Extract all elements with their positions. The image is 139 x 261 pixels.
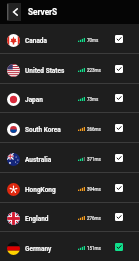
staticText: 394ms [87, 187, 101, 192]
staticText: United States [25, 67, 65, 75]
staticText: 371ms [87, 157, 101, 162]
staticText: 266ms [87, 127, 101, 132]
button[interactable]: Germany [0, 232, 139, 261]
button[interactable]: South Korea [0, 113, 139, 143]
button[interactable]: Select HongKong [115, 184, 123, 192]
staticText: Australia [25, 156, 52, 164]
staticText: 151ms [87, 246, 101, 251]
staticText: 73ms [87, 97, 99, 102]
button[interactable]: Select South Korea [115, 124, 123, 132]
button[interactable]: Japan [0, 83, 139, 113]
button[interactable]: Select Germany [115, 243, 123, 251]
staticText: South Korea [25, 126, 61, 134]
button[interactable]: United States [0, 54, 139, 84]
staticText: Germany [25, 245, 52, 253]
staticText: Canada [25, 37, 47, 45]
staticText: 276ms [87, 216, 101, 221]
button[interactable]: Select Canada [115, 35, 123, 43]
button[interactable]: Select England [115, 213, 123, 221]
button[interactable]: Canada [0, 24, 139, 54]
staticText: 223ms [87, 68, 101, 73]
staticText: ServerS [28, 7, 58, 17]
button[interactable]: Select Japan [115, 94, 123, 102]
button[interactable]: Australia [0, 143, 139, 173]
button[interactable]: Select United States [115, 65, 123, 73]
button[interactable]: Select Australia [115, 154, 123, 162]
button[interactable]: Back [7, 3, 21, 21]
button[interactable]: England [0, 202, 139, 232]
staticText: Japan [25, 96, 43, 104]
button[interactable]: HongKong [0, 173, 139, 203]
staticText: HongKong [25, 186, 56, 194]
staticText: England [25, 215, 49, 223]
staticText: 70ms [87, 38, 99, 43]
